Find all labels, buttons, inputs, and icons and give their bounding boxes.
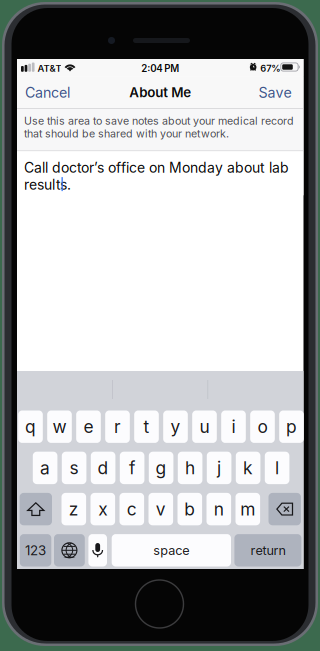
button[interactable]: q — [18, 410, 43, 443]
staticText: Cancel — [25, 84, 70, 101]
button[interactable]: return — [234, 534, 301, 566]
button[interactable]: g — [149, 452, 173, 484]
staticText: t — [143, 416, 149, 437]
button[interactable]: a — [33, 452, 57, 484]
staticText: that should be shared with your network. — [24, 127, 229, 140]
staticText: r — [114, 416, 121, 437]
staticText: w — [52, 416, 66, 437]
staticText: i — [231, 416, 235, 437]
button[interactable]: Delete — [268, 493, 301, 525]
staticText: return — [250, 543, 285, 558]
button[interactable]: p — [279, 410, 304, 443]
staticText: 67% — [260, 63, 280, 74]
button[interactable]: z — [61, 493, 86, 525]
staticText: a — [40, 457, 50, 478]
staticText: 2:04 PM — [141, 63, 179, 74]
button[interactable]: 123 — [20, 534, 51, 566]
staticText: Save — [258, 84, 291, 101]
staticText: b — [184, 499, 195, 520]
button[interactable]: Dictation — [88, 534, 107, 566]
staticText: space — [153, 543, 189, 558]
staticText: p — [286, 416, 297, 437]
button[interactable]: y — [163, 410, 188, 443]
button[interactable]: o — [250, 410, 275, 443]
button[interactable]: e — [76, 410, 101, 443]
staticText: k — [243, 457, 253, 478]
staticText: z — [69, 499, 79, 520]
staticText: q — [25, 416, 36, 437]
staticText: v — [156, 499, 166, 520]
staticText: d — [98, 457, 109, 478]
button[interactable]: Cancel — [17, 77, 80, 107]
button[interactable]: k — [236, 452, 260, 484]
staticText: f — [129, 457, 135, 478]
button[interactable]: Shift — [20, 493, 52, 525]
staticText: Use this area to save notes about your m… — [24, 114, 294, 127]
button[interactable]: d — [91, 452, 115, 484]
staticText: o — [257, 416, 267, 437]
staticText: j — [217, 457, 221, 478]
staticText: Call doctor’s office on Monday about lab — [24, 159, 289, 176]
staticText: results. — [24, 176, 71, 193]
staticText: g — [156, 457, 167, 478]
staticText: AT&T — [37, 63, 61, 74]
button[interactable]: h — [178, 452, 202, 484]
button[interactable]: u — [192, 410, 217, 443]
staticText: u — [199, 416, 209, 437]
staticText: s — [70, 457, 79, 478]
button[interactable]: c — [119, 493, 144, 525]
button[interactable]: f — [120, 452, 144, 484]
button[interactable]: n — [206, 493, 231, 525]
staticText: About Me — [129, 84, 191, 100]
staticText: 123 — [25, 542, 46, 558]
staticText: l — [275, 457, 279, 478]
button[interactable]: v — [148, 493, 173, 525]
button[interactable]: l — [265, 452, 289, 484]
button[interactable]: m — [235, 493, 260, 525]
staticText: x — [98, 499, 107, 520]
button[interactable]: r — [105, 410, 130, 443]
button[interactable]: Save — [248, 77, 303, 107]
staticText: m — [240, 499, 255, 520]
button[interactable]: Next keyboard — [54, 534, 85, 566]
staticText: h — [185, 457, 195, 478]
staticText: c — [127, 499, 137, 520]
button[interactable]: w — [47, 410, 72, 443]
staticText: y — [170, 416, 180, 437]
staticText: n — [214, 499, 224, 520]
button[interactable]: i — [221, 410, 246, 443]
button[interactable]: b — [177, 493, 202, 525]
button[interactable]: t — [134, 410, 159, 443]
staticText: e — [83, 416, 93, 437]
button[interactable]: j — [207, 452, 231, 484]
button[interactable]: space — [112, 534, 231, 566]
button[interactable]: x — [90, 493, 115, 525]
button[interactable]: s — [62, 452, 86, 484]
